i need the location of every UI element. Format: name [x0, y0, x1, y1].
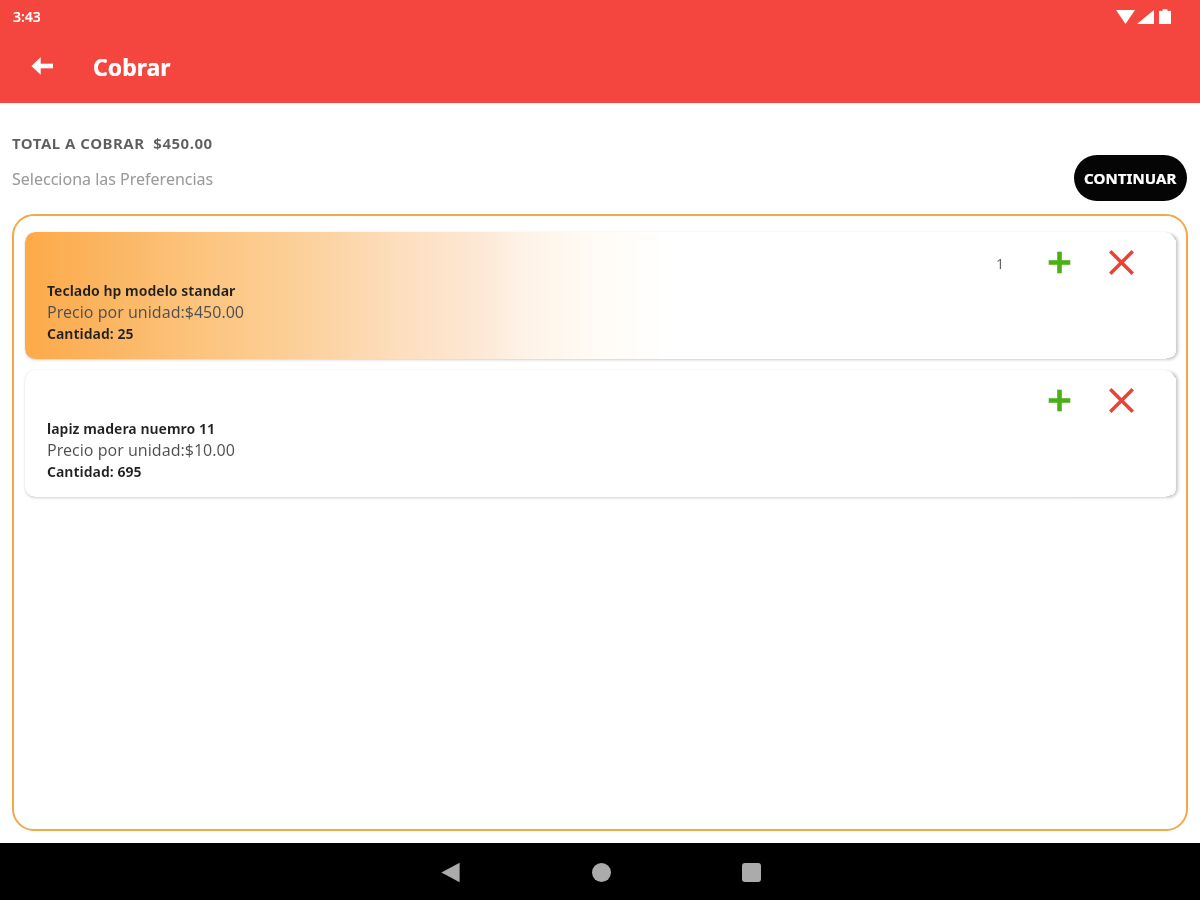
button[interactable]: Back: [427, 849, 473, 895]
button[interactable]: Back: [19, 43, 65, 89]
button[interactable]: lapiz madera nuemro 11: [25, 370, 1175, 497]
staticText: Precio por unidad:$10.00: [47, 439, 235, 461]
staticText: 1: [996, 254, 1005, 273]
button[interactable]: Add: [1042, 245, 1076, 279]
staticText: Selecciona las Preferencias: [12, 168, 214, 190]
staticText: Precio por unidad:$450.00: [47, 301, 244, 323]
button[interactable]: CONTINUAR: [1074, 155, 1187, 201]
staticText: Teclado hp modelo standar: [47, 281, 236, 300]
button[interactable]: Add: [1042, 383, 1076, 417]
button[interactable]: Home: [578, 849, 624, 895]
button[interactable]: Remove: [1104, 245, 1138, 279]
button[interactable]: Teclado hp modelo standar: [25, 232, 1175, 359]
staticText: 3:43: [13, 7, 41, 26]
staticText: Cantidad: 695: [47, 462, 142, 481]
staticText: TOTAL A COBRAR $450.00: [12, 133, 213, 153]
button[interactable]: Remove: [1104, 383, 1138, 417]
staticText: Cobrar: [93, 51, 171, 82]
button[interactable]: Recents: [728, 849, 774, 895]
staticText: Cantidad: 25: [47, 324, 134, 343]
staticText: lapiz madera nuemro 11: [47, 419, 215, 438]
staticText: CONTINUAR: [1084, 168, 1177, 188]
